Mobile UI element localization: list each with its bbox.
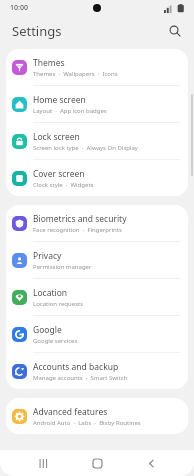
staticText: Home screen (33, 94, 86, 106)
button[interactable]: Google (6, 316, 188, 352)
button[interactable]: Advanced features (6, 398, 188, 434)
staticText: Google services (33, 337, 78, 345)
button[interactable]: Cover screen (6, 160, 188, 196)
staticText: Lock screen (33, 131, 80, 143)
staticText: Settings (12, 22, 62, 40)
staticText: Biometrics and security (33, 213, 127, 225)
staticText: Location requests (33, 300, 84, 308)
staticText: Face recognition · Fingerprints (33, 226, 122, 234)
staticText: Location (33, 287, 68, 299)
button[interactable]: Themes (6, 49, 188, 85)
staticText: Screen lock type · Always On Display (33, 144, 138, 152)
button[interactable]: Home screen (6, 86, 188, 122)
staticText: Advanced features (33, 406, 108, 418)
button[interactable]: Search (162, 18, 188, 44)
staticText: Privacy (33, 250, 62, 262)
staticText: Themes (33, 57, 65, 69)
staticText: Android Auto · Labs · Bixby Routines (33, 419, 141, 427)
button[interactable]: Lock screen (6, 123, 188, 159)
button[interactable]: Home (86, 452, 108, 474)
button[interactable]: Back (140, 452, 162, 474)
staticText: Cover screen (33, 168, 85, 180)
staticText: 10:00 (10, 3, 28, 13)
staticText: Permission manager (33, 263, 92, 271)
staticText: Google (33, 324, 62, 336)
button[interactable]: Biometrics and security (6, 205, 188, 241)
staticText: Manage accounts · Smart Switch (33, 374, 128, 382)
staticText: Clock style · Widgets (33, 181, 94, 189)
staticText: Layout · App icon badges (33, 107, 107, 115)
button[interactable]: Privacy (6, 242, 188, 278)
button[interactable]: Recents (32, 452, 54, 474)
button[interactable]: Location (6, 279, 188, 315)
staticText: Accounts and backup (33, 361, 119, 373)
button[interactable]: Accounts and backup (6, 353, 188, 389)
staticText: Themes · Wallpapers · Icons (33, 70, 118, 78)
